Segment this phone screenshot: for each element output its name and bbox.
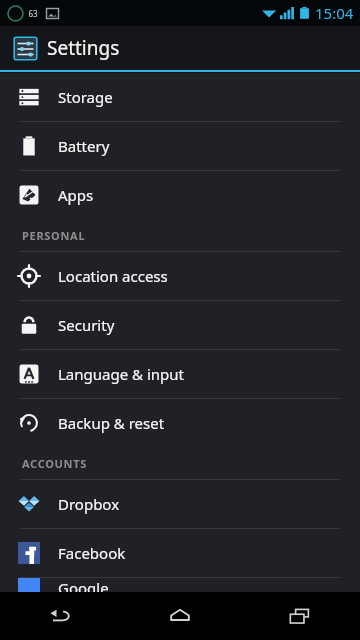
button[interactable]: Language & input [0,350,360,398]
button[interactable]: Recent apps [240,592,360,640]
button[interactable]: Apps [0,171,360,219]
button[interactable]: Location access [0,252,360,300]
button[interactable]: Dropbox [0,480,360,528]
staticText: Security [58,315,115,335]
staticText: PERSONAL [22,228,86,243]
button[interactable]: Backup & reset [0,399,360,447]
staticText: Battery [58,136,110,156]
staticText: 63 [28,8,38,19]
staticText: Language & input [58,364,184,384]
staticText: Apps [58,185,94,205]
button[interactable]: Back [0,592,120,640]
button[interactable]: Facebook [0,529,360,577]
staticText: Storage [58,87,113,107]
staticText: Backup & reset [58,413,165,433]
staticText: Facebook [58,543,126,563]
button[interactable]: Google [0,578,360,592]
button[interactable]: Battery [0,122,360,170]
staticText: 15:04 [315,3,354,23]
button[interactable]: Security [0,301,360,349]
staticText: Dropbox [58,494,120,514]
staticText: Google [58,578,109,592]
button[interactable]: Home [120,592,240,640]
button[interactable]: Settings [0,26,360,70]
staticText: Location access [58,266,168,286]
staticText: ACCOUNTS [22,456,88,471]
staticText: Settings [47,35,120,61]
button[interactable]: Storage [0,73,360,121]
